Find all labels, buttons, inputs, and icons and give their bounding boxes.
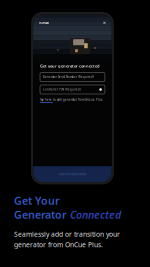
staticText: Seamlessly add or transition your: [14, 230, 120, 239]
staticText: Get your generator connected: [40, 63, 100, 68]
staticText: KOHLER: [39, 21, 49, 25]
button[interactable]: Tap here to add generator from OnCue Plu…: [40, 98, 103, 103]
staticText: Controller PIN (Required): [43, 88, 81, 91]
staticText: Tap here to add generator from OnCue Plu…: [40, 98, 103, 101]
staticText: Connected: [70, 208, 121, 222]
staticText: Generator: [14, 208, 67, 222]
button[interactable]: Controller PIN (Required): [40, 85, 105, 94]
button[interactable]: Generator Serial Number (Required): [40, 72, 105, 81]
staticText: ✕: [103, 21, 106, 25]
button[interactable]: Connect Generator: [33, 166, 112, 182]
staticText: Connect Generator: [58, 172, 86, 176]
staticText: Get Your: [14, 193, 60, 208]
staticText: Generator Serial Number (Required): [43, 75, 94, 79]
staticText: generator from OnCue Plus.: [14, 240, 103, 249]
button[interactable]: Close: [103, 21, 106, 25]
